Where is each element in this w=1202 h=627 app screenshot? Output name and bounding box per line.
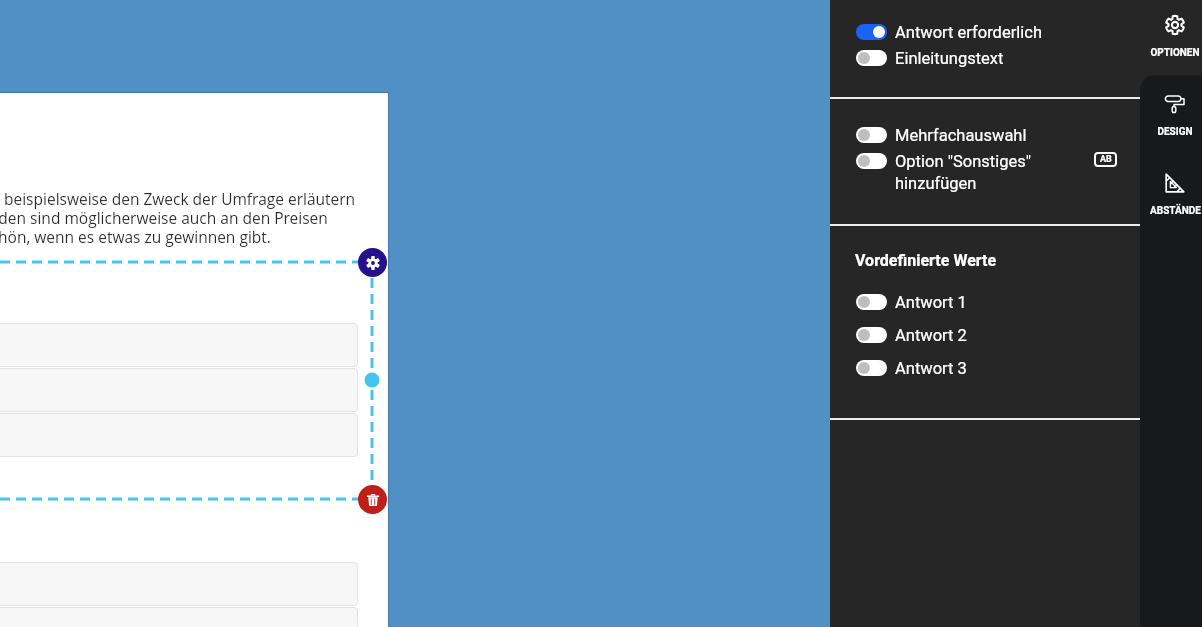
button[interactable]: Einstellungen bbox=[358, 248, 387, 277]
staticText: ABSTÄNDE bbox=[1150, 205, 1201, 217]
staticText: Antwort 2 bbox=[895, 326, 967, 345]
staticText: Antwort 1 bbox=[895, 293, 967, 312]
button[interactable]: Antwort 3 bbox=[856, 356, 1126, 375]
button[interactable]: Antwort 2 bbox=[856, 323, 1126, 342]
button[interactable] bbox=[0, 413, 358, 457]
button[interactable]: Option "Sonstiges" hinzufügen bbox=[856, 149, 1126, 190]
staticText: DESIGN bbox=[1157, 126, 1193, 138]
button[interactable]: Löschen bbox=[358, 485, 387, 514]
button[interactable]: OPTIONEN bbox=[1140, 15, 1202, 67]
button[interactable]: AB Variante bbox=[1094, 152, 1117, 167]
button[interactable]: DESIGN bbox=[1140, 94, 1202, 146]
staticText: Option "Sonstiges" hinzufügen bbox=[895, 152, 1031, 193]
button[interactable] bbox=[0, 368, 358, 412]
button[interactable]: Antwort erforderlich bbox=[856, 20, 1126, 39]
staticText: Mehrfachauswahl bbox=[895, 126, 1027, 145]
staticText: Antwort 3 bbox=[895, 359, 967, 378]
staticText: Antwort erforderlich bbox=[895, 23, 1043, 42]
button[interactable]: Antwort 1 bbox=[856, 290, 1126, 309]
button[interactable]: Einleitungstext bbox=[856, 46, 1126, 65]
staticText: Vordefinierte Werte bbox=[855, 251, 997, 270]
staticText: AB bbox=[1100, 154, 1112, 165]
button[interactable]: Mehrfachauswahl bbox=[856, 123, 1126, 142]
button[interactable] bbox=[0, 562, 358, 606]
staticText: Hier können Sie beispielsweise den Zweck… bbox=[0, 188, 366, 247]
button[interactable] bbox=[0, 607, 358, 627]
button[interactable]: ABSTÄNDE bbox=[1140, 173, 1202, 225]
staticText: Einleitungstext bbox=[895, 49, 1004, 68]
staticText: OPTIONEN bbox=[1150, 47, 1200, 59]
button[interactable] bbox=[0, 323, 358, 367]
